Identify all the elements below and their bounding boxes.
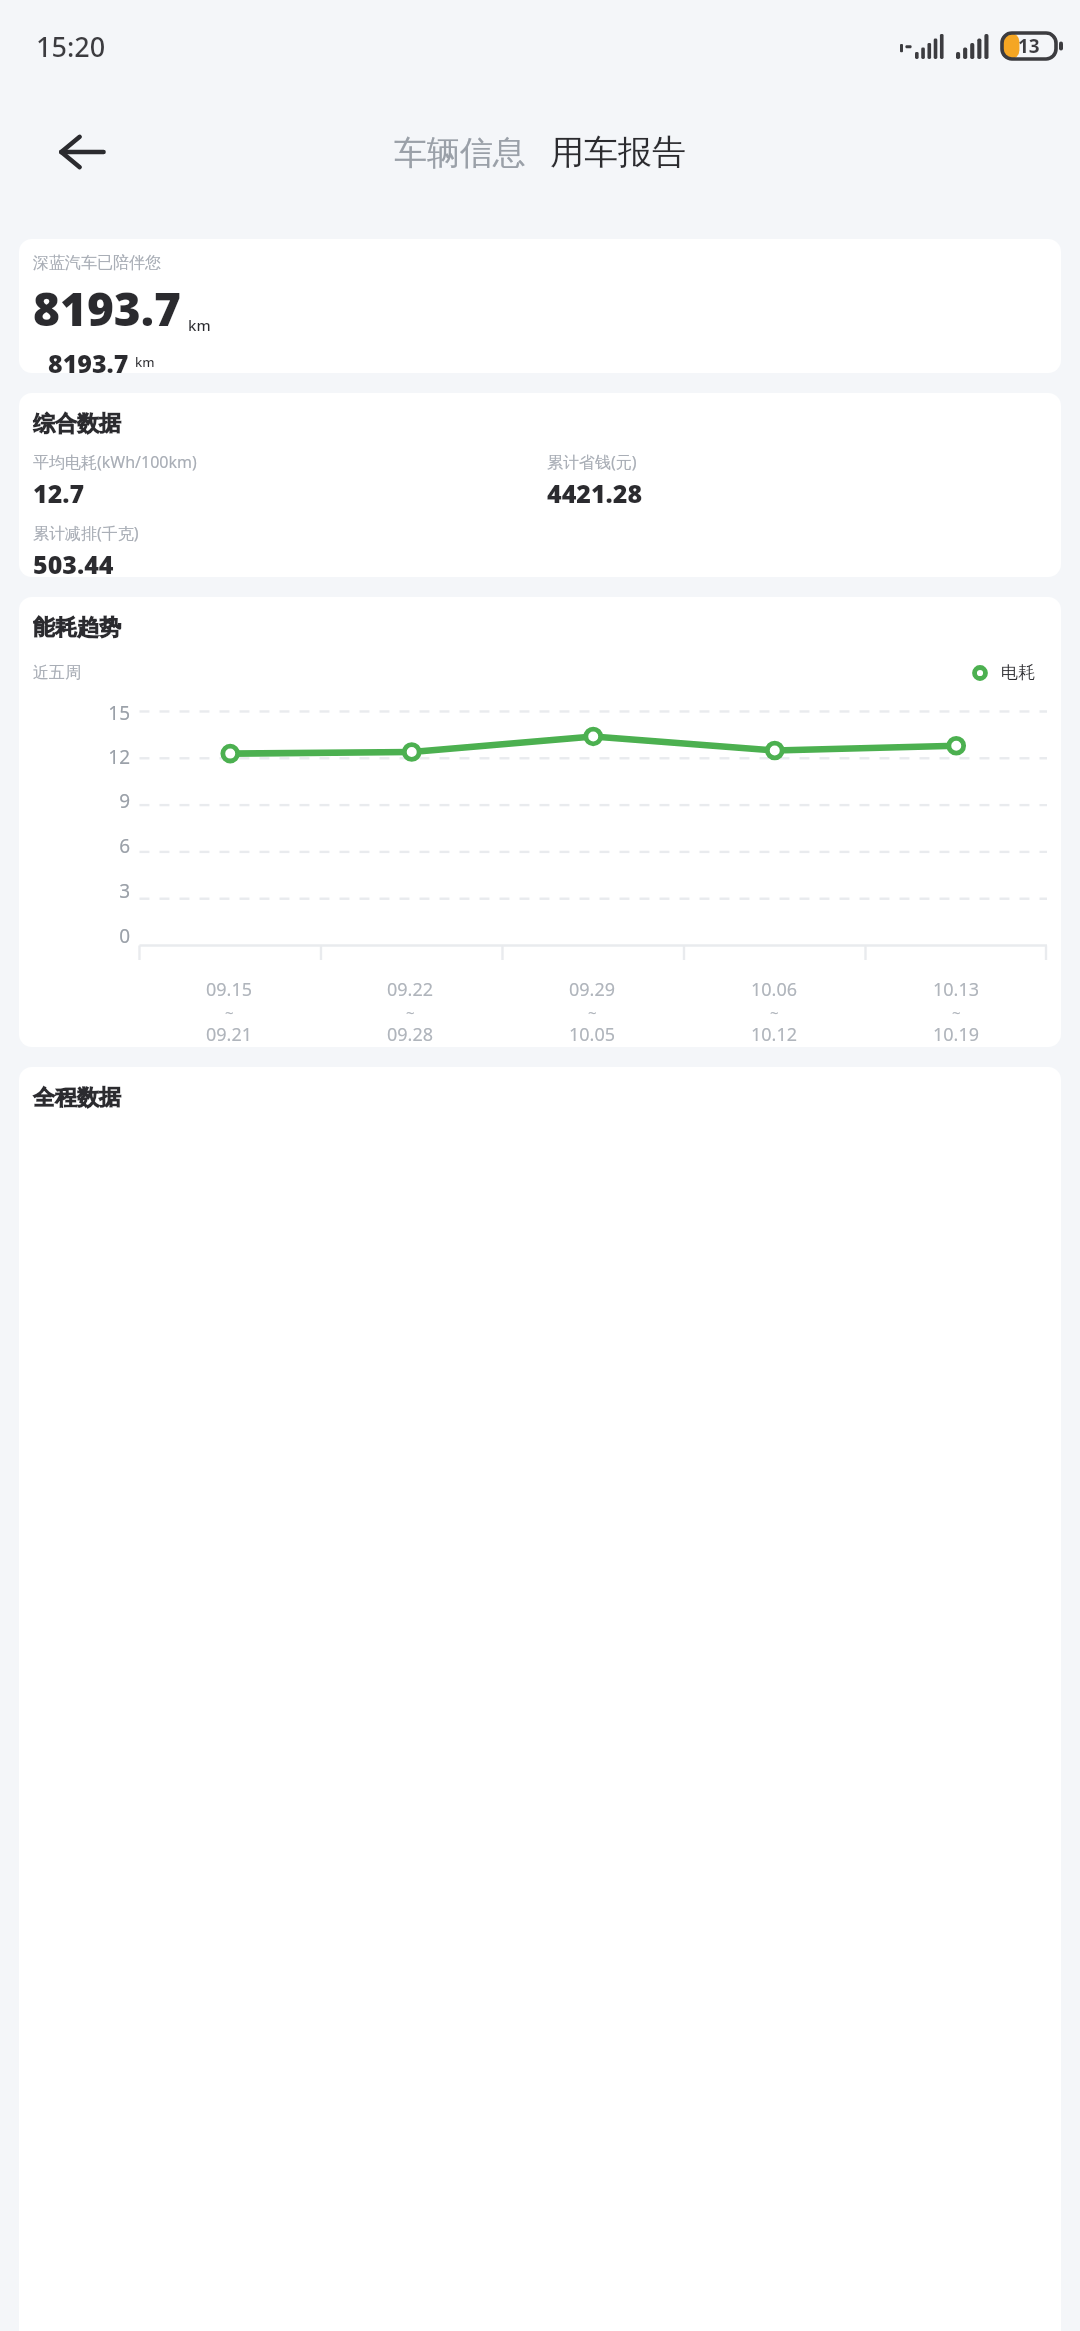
staticText: 能耗趋势 xyxy=(33,614,121,642)
staticText: 电耗 xyxy=(1001,662,1035,683)
staticText: 3 xyxy=(33,878,130,904)
staticText: 10.12 xyxy=(751,1022,798,1047)
staticText: 09.28 xyxy=(387,1022,434,1047)
staticText: 09.21 xyxy=(206,1022,253,1047)
staticText: 10.05 xyxy=(569,1022,616,1047)
staticText: 累计减排(千克) xyxy=(33,522,139,544)
staticText: 15 xyxy=(33,700,130,726)
staticText: 12.7 xyxy=(33,476,85,510)
staticText: 09.29 xyxy=(569,977,616,1002)
staticText: 10.19 xyxy=(933,1022,980,1047)
staticText: 13 xyxy=(1018,33,1040,59)
staticText: 503.44 xyxy=(33,547,114,577)
staticText: ~ xyxy=(588,1002,597,1022)
staticText: 09.22 xyxy=(387,977,434,1002)
staticText: 6 xyxy=(33,833,130,859)
staticText: 车辆信息 xyxy=(394,132,526,174)
staticText: ~ xyxy=(770,1002,779,1022)
button[interactable]: 车辆信息 xyxy=(392,132,528,174)
staticText: 8193.7 xyxy=(48,346,129,373)
button[interactable]: 用车报告 xyxy=(548,131,688,174)
staticText: 用车报告 xyxy=(550,131,686,174)
staticText: 4421.28 xyxy=(547,476,643,510)
staticText: 15:20 xyxy=(36,28,106,65)
staticText: ~ xyxy=(225,1002,234,1022)
button[interactable]: Back xyxy=(44,114,120,190)
staticText: 10.13 xyxy=(933,977,980,1002)
staticText: 平均电耗(kWh/100km) xyxy=(33,451,197,473)
staticText: 09.15 xyxy=(206,977,253,1002)
staticText: 12 xyxy=(33,744,130,770)
staticText: 9 xyxy=(33,788,130,814)
staticText: ~ xyxy=(952,1002,961,1022)
staticText: 全程数据 xyxy=(33,1084,121,1112)
staticText: 0 xyxy=(33,923,130,949)
staticText: km xyxy=(135,353,155,371)
staticText: ~ xyxy=(406,1002,415,1022)
staticText: km xyxy=(188,315,211,335)
staticText: 8193.7 xyxy=(33,277,182,340)
staticText: 10.06 xyxy=(751,977,798,1002)
staticText: 累计省钱(元) xyxy=(547,451,637,473)
staticText: 综合数据 xyxy=(33,410,121,438)
staticText: 深蓝汽车已陪伴您 xyxy=(33,253,161,273)
staticText: 近五周 xyxy=(33,663,81,683)
